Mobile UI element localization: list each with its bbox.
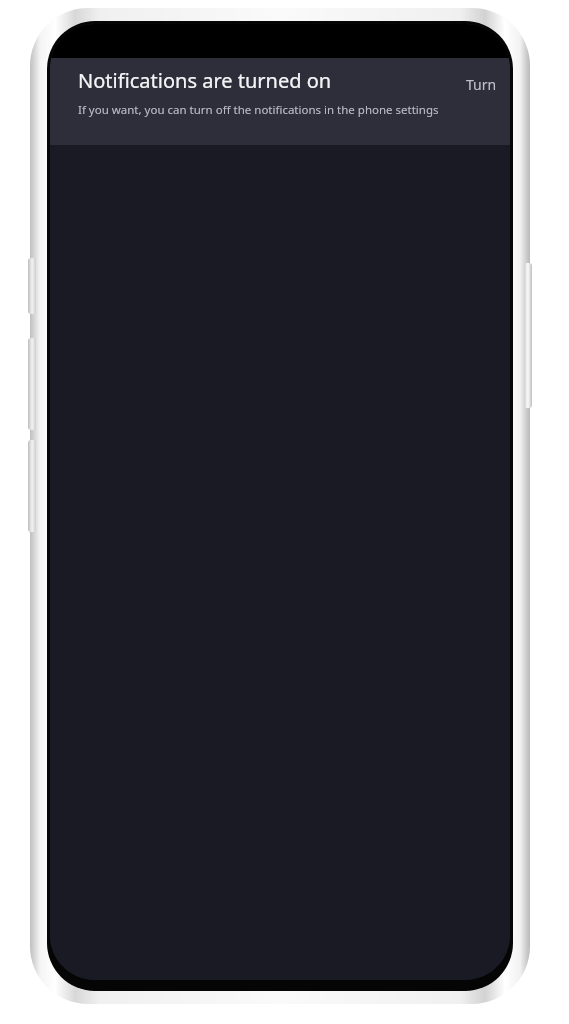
other: Volume down [28,440,36,532]
other: Mute switch [28,258,36,314]
staticText: Notifications are turned on [78,67,332,94]
other: Volume up [28,338,36,430]
other: Power [524,263,532,408]
staticText: Turn [466,75,497,94]
staticText: If you want, you can turn off the notifi… [78,102,439,118]
button[interactable]: Notifications are turned on [50,58,510,145]
button[interactable]: Turn [466,71,510,97]
